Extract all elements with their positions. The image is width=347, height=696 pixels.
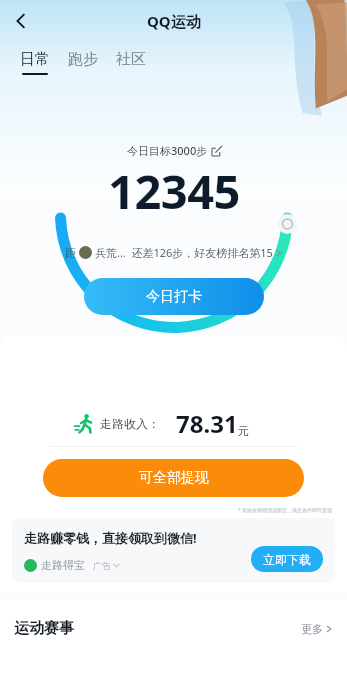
button[interactable]: 距 [0, 241, 347, 264]
staticText: 跑步 [68, 50, 98, 69]
staticText: QQ运动 [147, 11, 201, 31]
staticText: 立即下载 [263, 552, 311, 567]
button[interactable]: 跑步 [66, 48, 100, 77]
staticText: 走路得宝 [41, 558, 85, 572]
staticText: 走路赚零钱，直接领取到微信! [24, 529, 197, 547]
staticText: 今日打卡 [146, 288, 202, 306]
button[interactable]: 今日打卡 [84, 278, 264, 315]
staticText: 更多 [301, 622, 323, 636]
staticText: 日常 [20, 50, 50, 69]
staticText: 12345 [108, 159, 240, 223]
button[interactable]: 今日目标3000步 [127, 143, 222, 158]
button[interactable]: 日常 [18, 48, 52, 77]
staticText: 兵荒… 还差126步，好友榜排名第15 [95, 245, 273, 260]
staticText: 社区 [116, 50, 146, 69]
button[interactable]: 立即下载 [251, 546, 323, 572]
staticText: 78.31 [176, 407, 238, 440]
staticText: 广告 [93, 560, 111, 571]
button[interactable]: Back [0, 0, 42, 42]
button[interactable]: 走路赚零钱，直接领取到微信! [12, 518, 335, 583]
staticText: * 奖励金额视情况而定，满足条件即可提现 [238, 507, 333, 514]
staticText: 距 [65, 246, 76, 260]
staticText: 运动赛事 [14, 619, 74, 638]
button[interactable]: 可全部提现 [43, 459, 304, 497]
button[interactable]: 更多 [301, 622, 333, 636]
button[interactable]: 社区 [114, 48, 148, 77]
staticText: 可全部提现 [139, 469, 209, 487]
staticText: 今日目标3000步 [127, 143, 208, 158]
staticText: 元 [238, 424, 249, 438]
staticText: 走路收入： [100, 416, 160, 431]
